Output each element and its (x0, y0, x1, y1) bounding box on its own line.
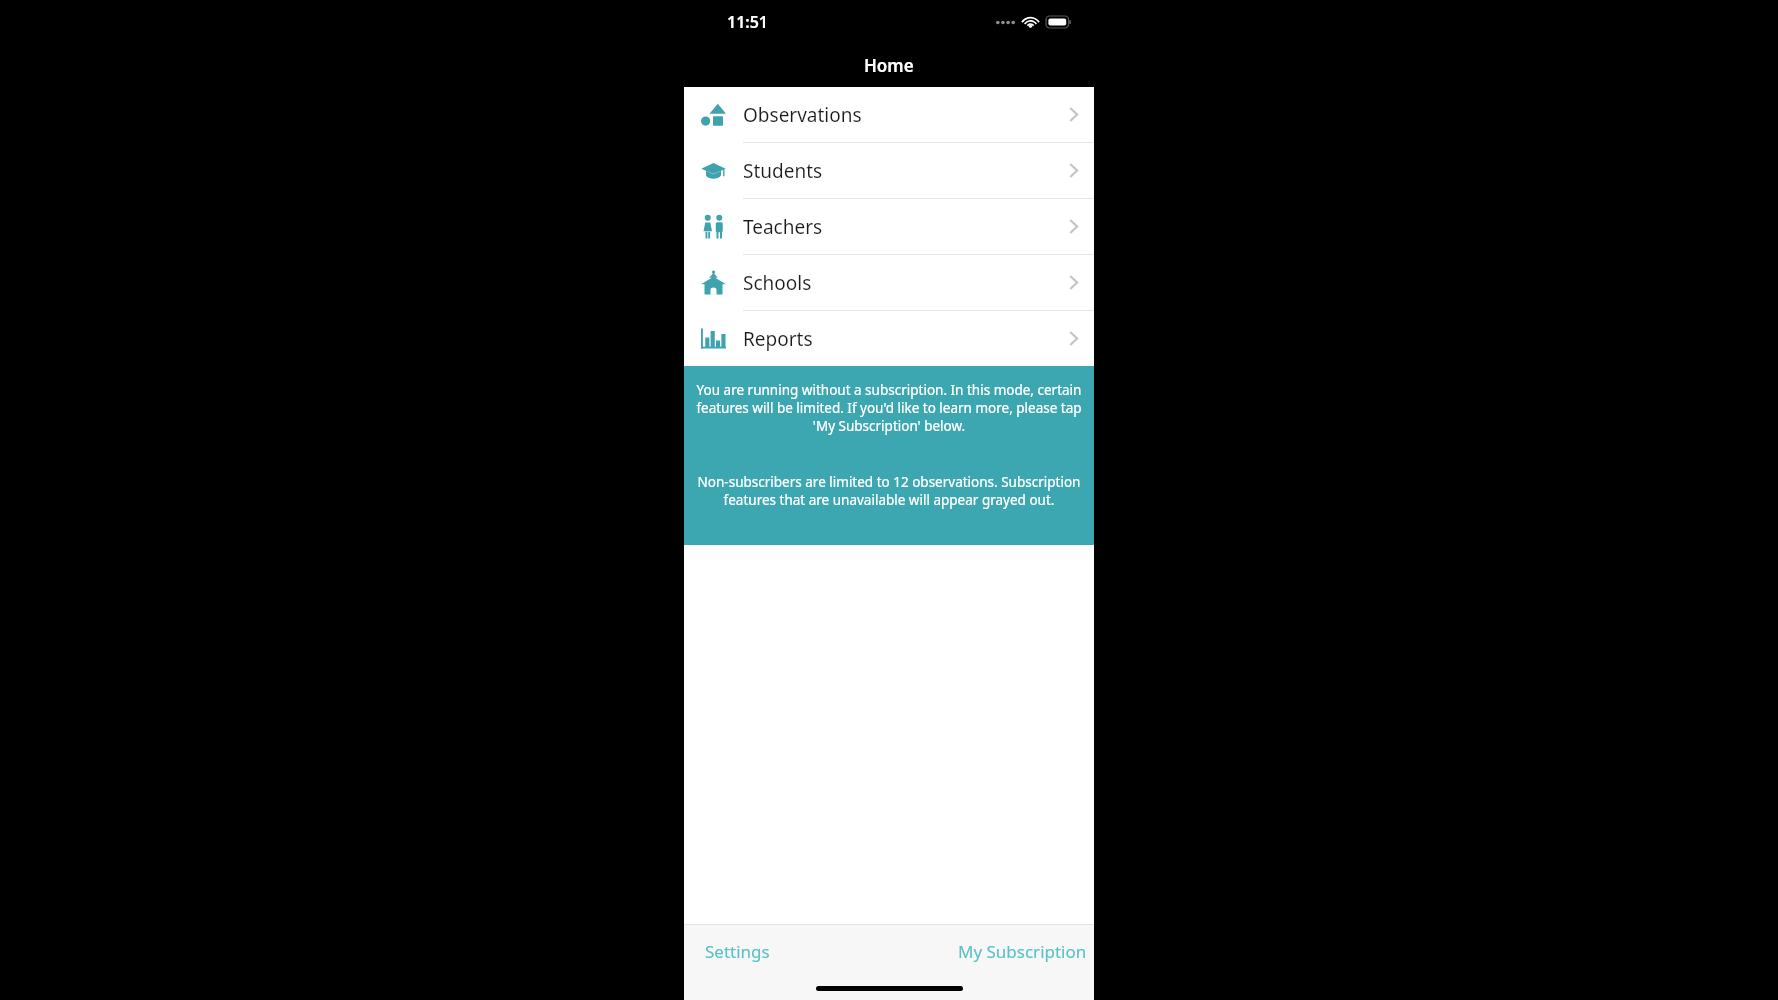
other: Home indicator (816, 986, 963, 991)
staticText: My Subscription (958, 940, 1087, 963)
button[interactable]: My Subscription (944, 930, 1094, 973)
staticText: 11:51 (727, 11, 769, 33)
button[interactable]: Settings (684, 930, 784, 973)
button[interactable]: Reports (684, 311, 1094, 366)
staticText: You are running without a subscription. … (696, 381, 1082, 435)
staticText: Non-subscribers are limited to 12 observ… (696, 473, 1082, 509)
staticText: Teachers (743, 214, 1052, 240)
button[interactable]: Teachers (684, 199, 1094, 255)
staticText: Reports (743, 326, 1052, 352)
button[interactable]: Students (684, 143, 1094, 199)
button[interactable]: Schools (684, 255, 1094, 311)
button[interactable]: Observations (684, 87, 1094, 143)
staticText: Settings (705, 940, 770, 963)
staticText: Students (743, 158, 1052, 184)
staticText: Schools (743, 270, 1052, 296)
staticText: Home (864, 54, 914, 77)
staticText: Observations (743, 102, 1052, 128)
